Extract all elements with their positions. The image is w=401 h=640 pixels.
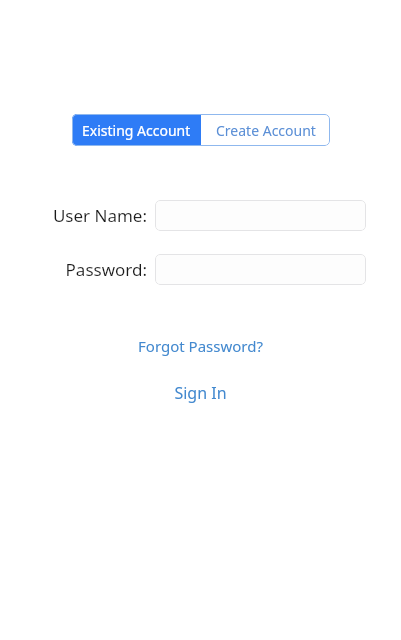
button[interactable]: Sign In (166, 380, 235, 406)
button[interactable]: Forgot Password? (132, 334, 269, 358)
button[interactable]: Existing Account (72, 114, 201, 146)
button[interactable]: Create Account (201, 114, 330, 146)
staticText: Existing Account (82, 121, 191, 140)
button[interactable] (155, 254, 366, 285)
button[interactable] (155, 200, 366, 231)
staticText: Password: (65, 258, 147, 281)
staticText: Forgot Password? (138, 336, 263, 356)
staticText: Sign In (174, 382, 227, 404)
staticText: User Name: (52, 204, 147, 227)
staticText: Create Account (216, 121, 316, 140)
